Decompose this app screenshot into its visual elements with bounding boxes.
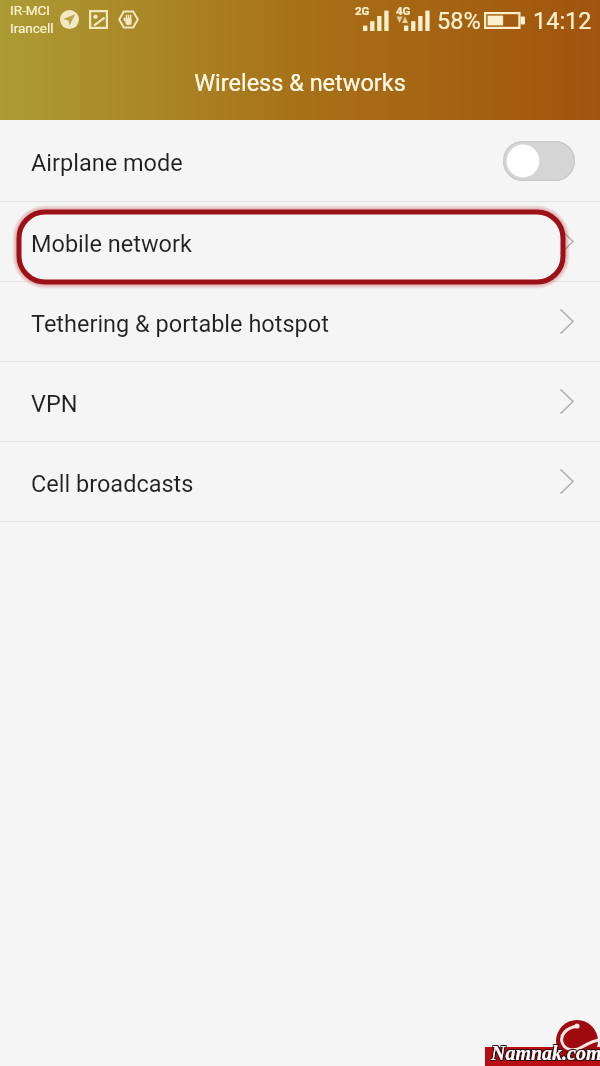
staticText: 14:12	[533, 7, 592, 35]
staticText: Namnak.com	[492, 1042, 600, 1064]
button[interactable]: Screenshot	[89, 10, 108, 29]
button[interactable]: Cell broadcasts	[0, 442, 600, 522]
button[interactable]: Airplane mode	[0, 120, 600, 202]
other: Open Mobile network	[560, 229, 574, 254]
other: Open Cell broadcasts	[560, 469, 574, 494]
staticText: Mobile network	[31, 230, 192, 258]
button[interactable]: Toggle Airplane mode	[503, 141, 575, 181]
staticText: Irancell	[10, 20, 54, 36]
button[interactable]: Permissions	[118, 9, 139, 30]
button[interactable]: Mobile network	[0, 202, 600, 282]
staticText: Namnak.com	[490, 1043, 600, 1065]
staticText: Namnak.com	[490, 1042, 600, 1064]
button[interactable]: Tethering & portable hotspot	[0, 282, 600, 362]
other: Open Tethering & portable hotspot	[560, 309, 574, 334]
button[interactable]: VPN	[0, 362, 600, 442]
staticText: 2G	[355, 4, 370, 17]
staticText: Cell broadcasts	[31, 470, 194, 498]
button[interactable]: Location	[60, 10, 79, 29]
staticText: Namnak.com	[491, 1041, 600, 1063]
staticText: Namnak.com	[491, 1043, 600, 1065]
staticText: Tethering & portable hotspot	[31, 310, 329, 338]
staticText: 4G	[396, 4, 411, 17]
staticText: Namnak.com	[492, 1043, 600, 1065]
staticText: Airplane mode	[31, 149, 183, 177]
staticText: Namnak.com	[492, 1041, 600, 1063]
staticText: Wireless & networks	[0, 69, 600, 97]
staticText: VPN	[31, 390, 78, 418]
staticText: Namnak.com	[490, 1041, 600, 1063]
staticText: 58%	[437, 7, 481, 35]
staticText: Namnak.com	[491, 1042, 600, 1064]
other: Open VPN	[560, 389, 574, 414]
staticText: IR-MCI	[10, 2, 50, 18]
